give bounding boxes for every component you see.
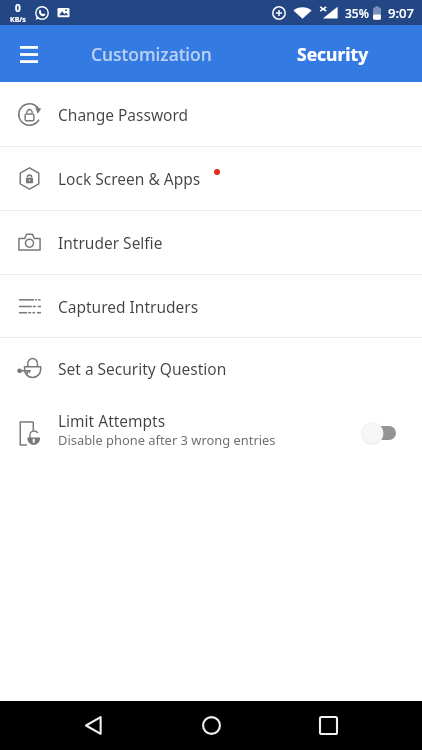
button[interactable]: Limit Attempts — [0, 398, 422, 460]
staticText: 0 — [15, 1, 21, 15]
button[interactable]: Limit attempts toggle — [360, 401, 422, 457]
button[interactable]: Security — [244, 25, 422, 82]
button[interactable]: Home — [187, 701, 236, 750]
staticText: Disable phone after 3 wrong entries — [58, 431, 276, 449]
button[interactable]: Captured Intruders — [0, 275, 422, 337]
staticText: KB/s — [10, 15, 26, 25]
staticText: Lock Screen & Apps — [58, 168, 201, 189]
button[interactable]: Lock Screen & Apps — [0, 147, 422, 210]
staticText: 35% — [345, 5, 369, 21]
staticText: Set a Security Question — [58, 358, 227, 379]
button[interactable]: Change Password — [0, 82, 422, 146]
button[interactable]: Open navigation menu — [0, 25, 58, 82]
staticText: 9:07 — [388, 4, 414, 22]
staticText: Change Password — [58, 104, 189, 125]
staticText: Customization — [91, 42, 212, 66]
staticText: Intruder Selfie — [58, 232, 163, 253]
button[interactable]: Set a Security Question — [0, 338, 422, 398]
button[interactable]: Recent apps — [304, 701, 353, 750]
staticText: Security — [297, 42, 369, 66]
button[interactable]: Intruder Selfie — [0, 211, 422, 274]
staticText: Captured Intruders — [58, 296, 199, 317]
button[interactable]: Back — [69, 701, 118, 750]
button[interactable]: Customization — [58, 25, 244, 82]
staticText: Limit Attempts — [58, 410, 166, 431]
